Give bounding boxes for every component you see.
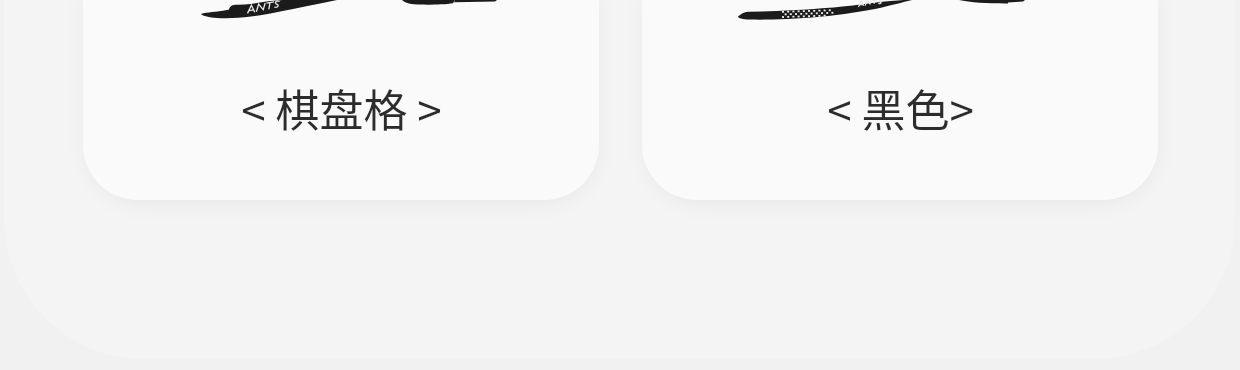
staticText: < 棋盘格 > — [241, 76, 442, 140]
button[interactable]: < 棋盘格 > — [83, 0, 599, 200]
staticText: < 黑色> — [827, 76, 974, 140]
button[interactable]: < 黑色> — [642, 0, 1158, 200]
